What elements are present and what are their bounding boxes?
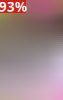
staticText: 93%: [0, 0, 27, 15]
